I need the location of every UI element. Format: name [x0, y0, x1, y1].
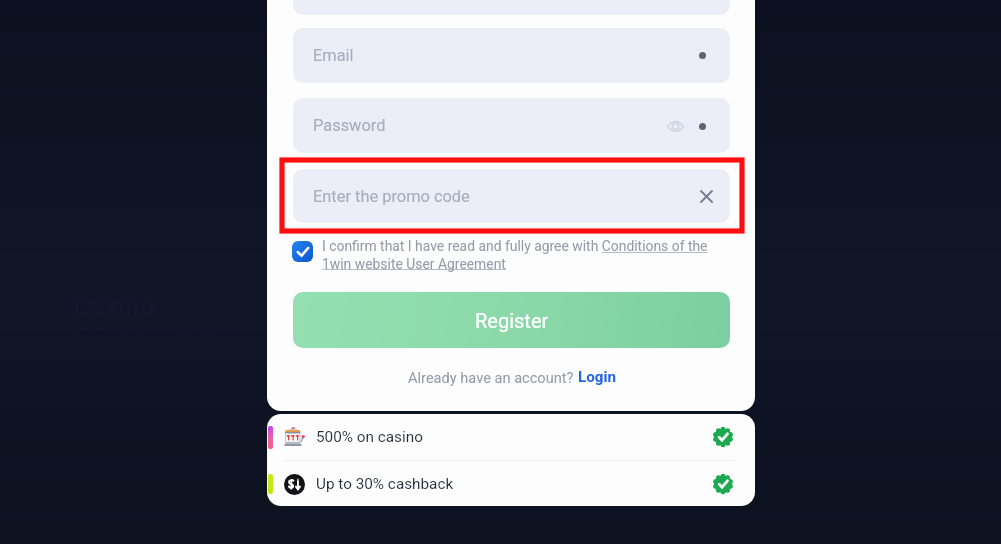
- button[interactable]: I confirm that I have read and fully agr…: [322, 238, 722, 272]
- button[interactable]: I confirm the user agreement: [292, 241, 313, 262]
- button[interactable]: Email: [293, 28, 730, 83]
- button[interactable]: Login: [578, 368, 616, 386]
- staticText: Login: [578, 368, 616, 386]
- staticText: I confirm that I have read and fully agr…: [322, 238, 722, 272]
- staticText: Register: [475, 309, 549, 332]
- staticText: Email: [313, 46, 354, 65]
- button[interactable]: Enter the promo code: [293, 169, 730, 223]
- staticText: Up to 30% cashback: [316, 475, 454, 493]
- button[interactable]: Up to 30% cashback: [267, 461, 755, 506]
- staticText: 500% on casino: [316, 428, 423, 446]
- staticText: Password: [313, 116, 386, 135]
- button[interactable]: Register: [293, 292, 730, 348]
- button[interactable]: Password: [293, 98, 730, 153]
- staticText: Enter the promo code: [313, 187, 470, 206]
- staticText: Already have an account?: [408, 369, 578, 386]
- button[interactable]: Show password: [664, 115, 686, 137]
- button[interactable]: 500% on casino: [267, 414, 755, 460]
- button[interactable]: Clear promo code: [694, 184, 718, 208]
